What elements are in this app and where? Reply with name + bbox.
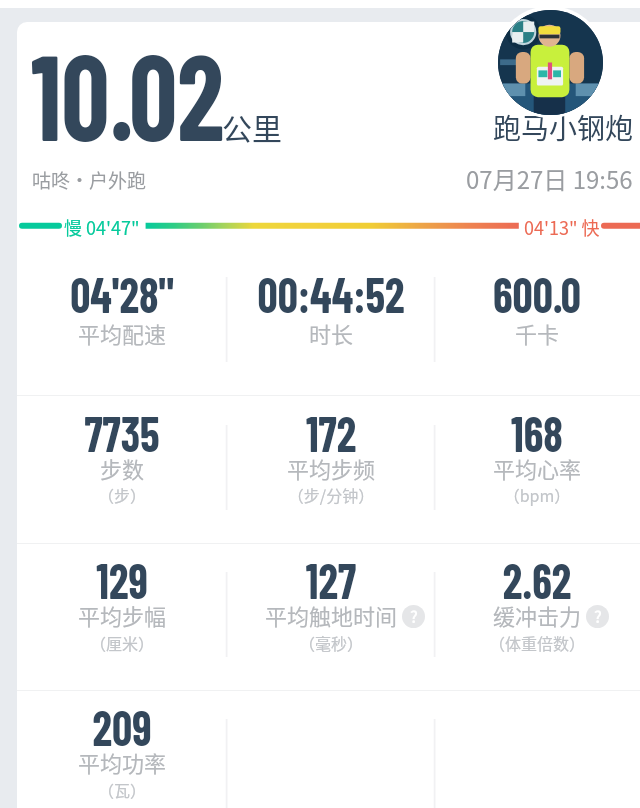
staticText: 平均配速	[17, 317, 272, 349]
button[interactable]: Help	[586, 605, 609, 628]
staticText: （步/分钟）	[181, 483, 481, 506]
staticText: 127	[197, 549, 464, 609]
staticText: （毫秒）	[181, 631, 481, 654]
staticText: ?	[410, 605, 418, 627]
staticText: 平均步幅	[17, 599, 272, 631]
staticText: 缓冲击力	[387, 599, 640, 631]
button[interactable]	[433, 260, 640, 380]
staticText: 平均步频	[181, 452, 481, 484]
staticText: 00:44:52	[197, 263, 464, 323]
staticText: 7735	[17, 402, 255, 462]
button[interactable]	[433, 546, 640, 666]
staticText: 168	[403, 402, 640, 462]
staticText: 咕咚·户外跑	[32, 166, 147, 194]
staticText: 平均心率	[387, 452, 640, 484]
staticText: 跑马小钢炮	[493, 107, 634, 148]
staticText: 时长	[181, 317, 481, 349]
staticText: 04'13" 快	[524, 214, 600, 240]
staticText: 209	[17, 696, 255, 756]
staticText: 步数	[17, 452, 272, 484]
staticText: 千卡	[387, 317, 640, 349]
staticText: （bpm）	[387, 483, 640, 506]
staticText: （体重倍数）	[387, 631, 640, 654]
button[interactable]	[18, 693, 226, 808]
button[interactable]	[18, 546, 226, 666]
staticText: 129	[17, 549, 255, 609]
button[interactable]	[227, 260, 435, 380]
staticText: ?	[594, 605, 602, 627]
staticText: 04'28"	[17, 263, 255, 323]
staticText: 172	[197, 402, 464, 462]
button[interactable]	[227, 546, 435, 666]
staticText: 公里	[222, 105, 282, 148]
staticText: （步）	[17, 483, 272, 506]
staticText: 慢 04'47"	[64, 214, 140, 240]
button[interactable]: Help	[402, 605, 425, 628]
staticText: 10.02	[31, 22, 224, 165]
staticText: 07月27日 19:56	[466, 161, 633, 196]
button[interactable]: User avatar	[494, 6, 606, 118]
button[interactable]	[18, 399, 226, 519]
button[interactable]	[433, 399, 640, 519]
button[interactable]	[227, 399, 435, 519]
staticText: 平均功率	[17, 746, 272, 778]
button[interactable]	[18, 260, 226, 380]
staticText: 平均触地时间	[181, 599, 481, 631]
staticText: 2.62	[403, 549, 640, 609]
staticText: 600.0	[403, 263, 640, 323]
staticText: （瓦）	[17, 778, 272, 801]
staticText: （厘米）	[17, 631, 272, 654]
